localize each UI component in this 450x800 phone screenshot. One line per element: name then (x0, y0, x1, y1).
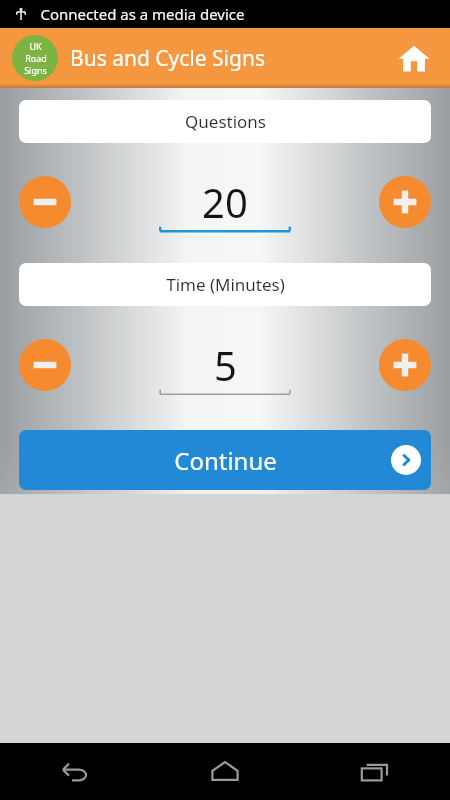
button[interactable]: Continue (19, 430, 431, 490)
staticText: Bus and Cycle Signs (70, 44, 265, 73)
staticText: Road (25, 52, 47, 64)
staticText: Questions (185, 110, 266, 133)
staticText: 5 (214, 338, 237, 392)
button[interactable]: UK Road Signs logo (12, 35, 58, 81)
staticText: Time (Minutes) (166, 273, 285, 296)
button[interactable]: Back (0, 743, 150, 800)
button[interactable]: Increase (379, 176, 431, 228)
staticText: Continue (174, 444, 277, 477)
button[interactable]: Decrease (19, 339, 71, 391)
button[interactable]: Time (Minutes) (19, 263, 431, 306)
button[interactable]: Home (390, 34, 438, 82)
button[interactable]: Decrease (19, 176, 71, 228)
staticText: UK (29, 40, 42, 52)
staticText: Connected as a media device (40, 4, 245, 24)
button[interactable]: Recent apps (300, 743, 450, 800)
staticText: 20 (202, 175, 248, 229)
button[interactable]: Home (150, 743, 300, 800)
button[interactable]: Increase (379, 339, 431, 391)
staticText: Signs (24, 64, 47, 76)
button[interactable]: Questions (19, 100, 431, 143)
